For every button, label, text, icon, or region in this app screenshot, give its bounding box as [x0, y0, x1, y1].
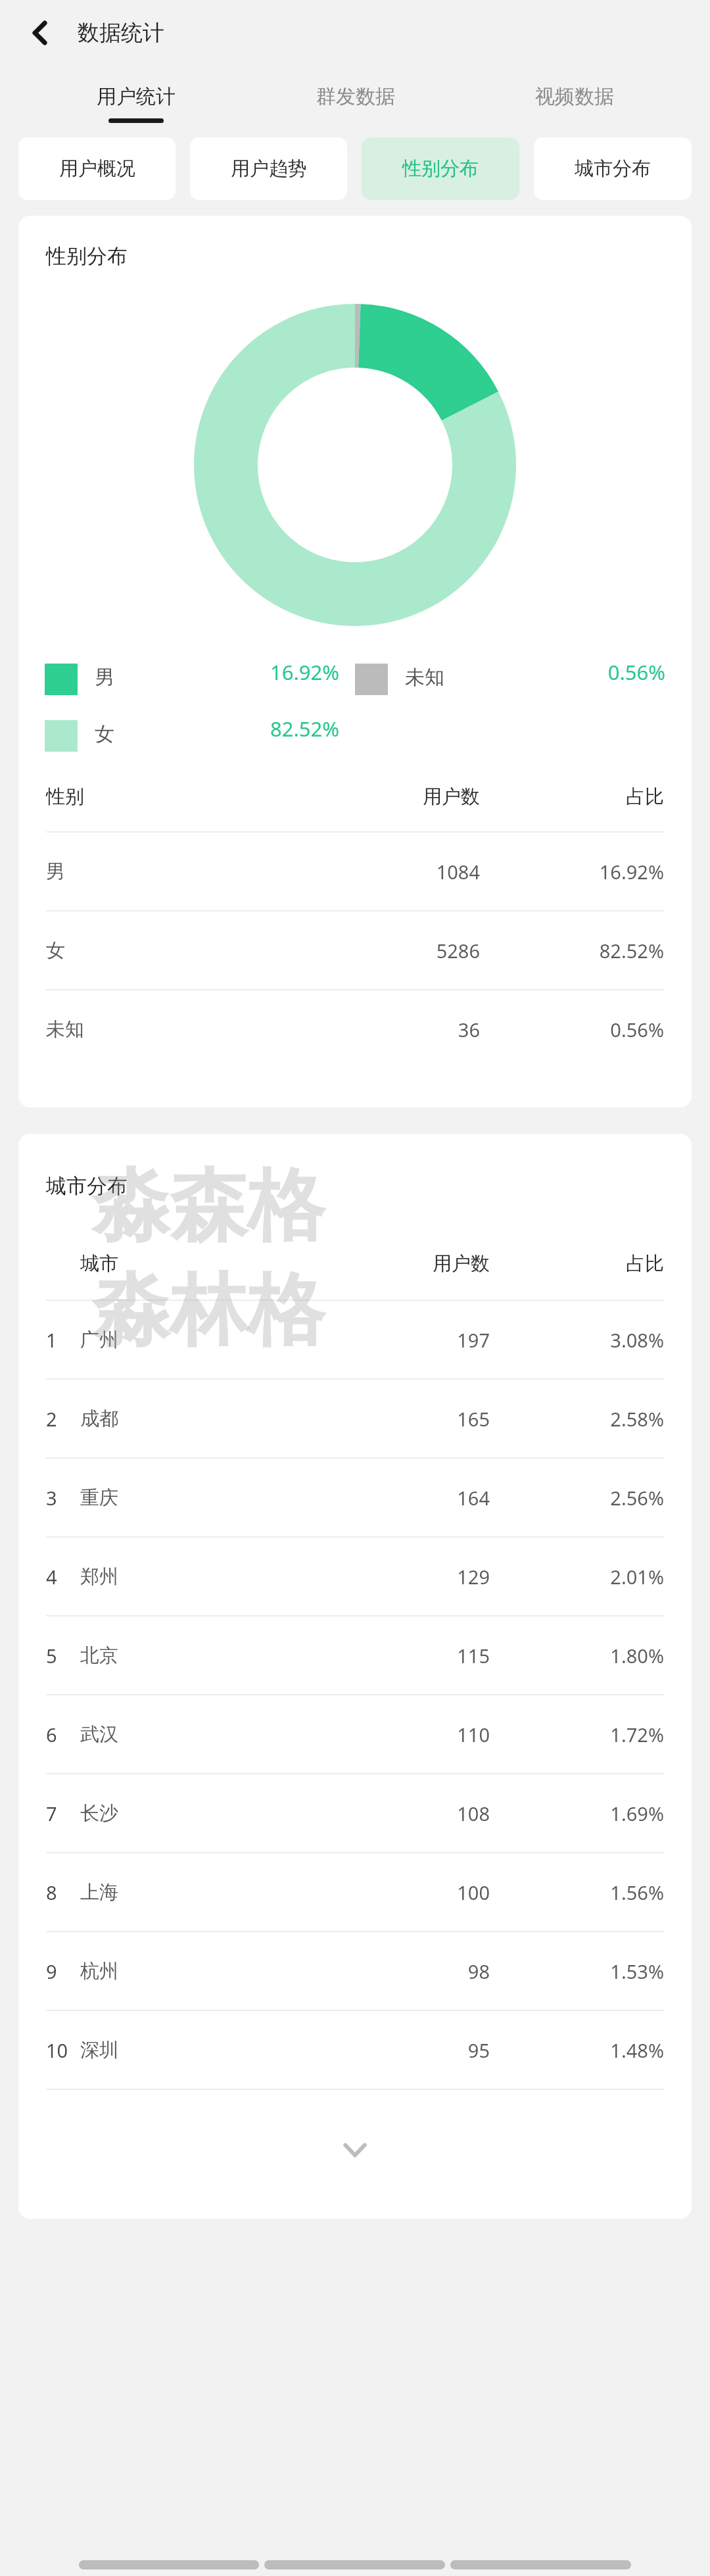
- staticText: 男: [46, 860, 263, 884]
- button[interactable]: 城市分布: [534, 137, 692, 200]
- staticText: 16.92%: [254, 658, 339, 686]
- button[interactable]: 未知: [355, 658, 665, 695]
- staticText: 性别: [46, 785, 263, 809]
- button[interactable]: 2: [46, 1380, 664, 1457]
- button[interactable]: 用户概况: [18, 137, 176, 200]
- staticText: 5: [46, 1643, 57, 1668]
- staticText: 成都: [80, 1407, 285, 1431]
- button[interactable]: 7: [46, 1774, 664, 1852]
- staticText: 1.53%: [490, 1958, 664, 1984]
- staticText: 1.69%: [490, 1801, 664, 1826]
- button[interactable]: 10: [46, 2011, 664, 2089]
- staticText: 110: [285, 1722, 490, 1747]
- staticText: 9: [46, 1958, 57, 1984]
- button[interactable]: Navigation: [264, 2560, 445, 2569]
- staticText: 用户概况: [59, 157, 135, 181]
- staticText: 1084: [263, 859, 480, 885]
- button[interactable]: 视频数据: [465, 84, 684, 123]
- staticText: 淼林格: [92, 1262, 325, 1360]
- staticText: 16.92%: [480, 859, 664, 885]
- staticText: 3: [46, 1485, 57, 1511]
- button[interactable]: 5: [46, 1616, 664, 1694]
- staticText: 男: [95, 665, 114, 690]
- button[interactable]: 9: [46, 1932, 664, 2010]
- button[interactable]: 1: [46, 1301, 664, 1378]
- staticText: 深圳: [80, 2038, 285, 2062]
- staticText: 郑州: [80, 1565, 285, 1589]
- staticText: 上海: [80, 1880, 285, 1905]
- staticText: 197: [285, 1327, 490, 1353]
- staticText: 95: [285, 2037, 490, 2063]
- button[interactable]: 6: [46, 1695, 664, 1773]
- button[interactable]: Back: [14, 7, 67, 59]
- button[interactable]: 用户统计: [26, 84, 246, 123]
- staticText: 36: [263, 1017, 480, 1042]
- button[interactable]: 4: [46, 1538, 664, 1615]
- staticText: 城市: [80, 1252, 285, 1276]
- staticText: 占比: [490, 1252, 664, 1276]
- button[interactable]: 男: [45, 658, 339, 695]
- staticText: 0.56%: [480, 1017, 664, 1042]
- staticText: 8: [46, 1880, 57, 1905]
- button[interactable]: Navigation: [79, 2560, 259, 2569]
- staticText: 165: [285, 1406, 490, 1432]
- staticText: 女: [95, 721, 114, 746]
- button[interactable]: 用户趋势: [190, 137, 347, 200]
- staticText: 重庆: [80, 1486, 285, 1510]
- staticText: 2.58%: [490, 1406, 664, 1432]
- button[interactable]: 女: [45, 715, 339, 752]
- staticText: 城市分布: [46, 1173, 128, 1199]
- staticText: 1.48%: [490, 2037, 664, 2063]
- staticText: 3.08%: [490, 1327, 664, 1353]
- staticText: 108: [285, 1801, 490, 1826]
- staticText: 城市分布: [575, 157, 651, 181]
- staticText: 100: [285, 1880, 490, 1905]
- staticText: 4: [46, 1564, 57, 1590]
- staticText: 占比: [480, 785, 664, 809]
- staticText: 武汉: [80, 1722, 285, 1747]
- button[interactable]: 群发数据: [246, 84, 465, 123]
- staticText: 1.80%: [490, 1643, 664, 1668]
- staticText: 129: [285, 1564, 490, 1590]
- staticText: 广州: [80, 1328, 285, 1352]
- staticText: 2: [46, 1406, 57, 1432]
- staticText: 164: [285, 1485, 490, 1511]
- staticText: 用户统计: [97, 84, 176, 109]
- staticText: 0.56%: [580, 658, 665, 686]
- staticText: 7: [46, 1801, 57, 1826]
- button[interactable]: 8: [46, 1853, 664, 1931]
- button[interactable]: 性别分布: [362, 137, 519, 200]
- staticText: 1: [46, 1327, 57, 1353]
- staticText: 用户数: [285, 1252, 490, 1276]
- staticText: 10: [46, 2037, 68, 2063]
- staticText: 视频数据: [535, 84, 614, 109]
- staticText: 82.52%: [480, 938, 664, 963]
- staticText: 淼森格: [92, 1157, 325, 1255]
- staticText: 1.72%: [490, 1722, 664, 1747]
- staticText: 长沙: [80, 1801, 285, 1826]
- staticText: 用户趋势: [231, 157, 307, 181]
- staticText: 6: [46, 1722, 57, 1747]
- staticText: 未知: [405, 665, 444, 690]
- staticText: 女: [46, 938, 263, 963]
- staticText: 性别分布: [46, 243, 128, 269]
- staticText: 未知: [46, 1017, 263, 1042]
- staticText: 2.01%: [490, 1564, 664, 1590]
- staticText: 杭州: [80, 1959, 285, 1983]
- staticText: 115: [285, 1643, 490, 1668]
- button[interactable]: 3: [46, 1459, 664, 1536]
- staticText: 82.52%: [254, 715, 339, 742]
- staticText: 性别分布: [402, 157, 479, 181]
- button[interactable]: Navigation: [450, 2560, 631, 2569]
- staticText: 用户数: [263, 785, 480, 809]
- staticText: 98: [285, 1958, 490, 1984]
- staticText: 数据统计: [78, 19, 164, 47]
- staticText: 群发数据: [316, 84, 395, 109]
- staticText: 5286: [263, 938, 480, 963]
- staticText: 2.56%: [490, 1485, 664, 1511]
- staticText: 1.56%: [490, 1880, 664, 1905]
- button[interactable]: Expand more: [18, 2127, 692, 2173]
- staticText: 北京: [80, 1643, 285, 1668]
